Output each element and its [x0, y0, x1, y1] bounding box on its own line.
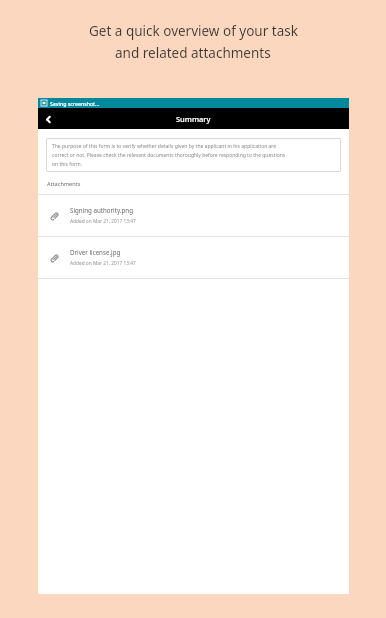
staticText: The purpose of this form is to verify wh…	[52, 143, 277, 150]
button[interactable]: Attachment	[38, 237, 349, 278]
other: Attachment	[48, 252, 60, 264]
staticText: correct or not. Please check the relevan…	[52, 152, 286, 159]
staticText: Signing authority.png	[70, 206, 133, 214]
staticText: Added on Mar 21, 2017 13:47	[70, 218, 136, 225]
staticText: Saving screenshot...	[50, 100, 100, 107]
staticText: on this form.	[52, 161, 83, 167]
staticText: Driver license.jpg	[70, 248, 121, 256]
staticText: Added on Mar 21, 2017 13:47	[70, 260, 136, 267]
staticText: Get a quick overview of your task	[89, 22, 298, 40]
button[interactable]: Attachment	[38, 195, 349, 236]
staticText: Attachments	[47, 180, 81, 188]
other: Attachment	[48, 210, 60, 222]
staticText: and related attachments	[115, 44, 271, 62]
staticText: Summary	[176, 114, 211, 124]
button[interactable]: Back	[38, 109, 58, 129]
